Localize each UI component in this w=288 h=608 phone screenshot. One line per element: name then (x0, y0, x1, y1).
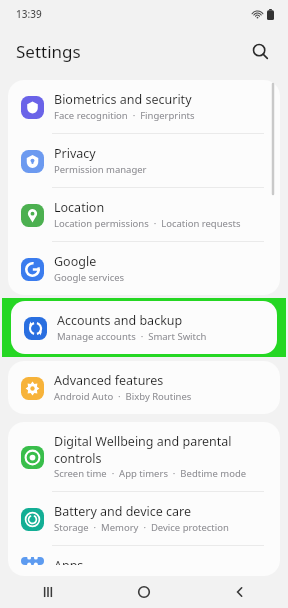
staticText: Face recognition · Fingerprints (54, 109, 195, 122)
button[interactable]: Home (96, 576, 192, 608)
staticText: Google services (54, 271, 125, 284)
staticText: Storage · Memory · Device protection (54, 521, 229, 534)
staticText: Location permissions · Location requests (54, 217, 241, 230)
staticText: Battery and device care (54, 503, 192, 520)
button[interactable]: Accounts and backup (11, 301, 277, 354)
button[interactable]: Advanced features (8, 361, 280, 414)
button[interactable]: Digital Wellbeing and parental controls (8, 422, 280, 491)
staticText: Privacy (54, 145, 96, 162)
button[interactable]: Recents (0, 576, 96, 608)
staticText: Digital Wellbeing and parental controls (54, 433, 268, 466)
button[interactable]: Google (8, 242, 280, 295)
staticText: Advanced features (54, 372, 164, 389)
button[interactable]: Back (192, 576, 288, 608)
staticText: Settings (16, 40, 81, 63)
staticText: Manage accounts · Smart Switch (57, 330, 207, 343)
button[interactable]: Privacy (8, 134, 280, 187)
staticText: Android Auto · Bixby Routines (54, 390, 192, 403)
button[interactable]: Apps (8, 546, 280, 576)
staticText: Accounts and backup (57, 312, 183, 329)
staticText: Apps (54, 557, 84, 565)
staticText: Location (54, 199, 105, 216)
staticText: Google (54, 253, 97, 270)
staticText: 13:39 (16, 7, 42, 21)
button[interactable]: Location (8, 188, 280, 241)
staticText: Screen time · App timers · Bedtime mode (54, 467, 247, 480)
button[interactable]: Biometrics and security (8, 80, 280, 133)
button[interactable]: Search (242, 33, 278, 69)
staticText: Biometrics and security (54, 91, 192, 108)
staticText: Permission manager (54, 163, 147, 176)
button[interactable]: Battery and device care (8, 492, 280, 545)
